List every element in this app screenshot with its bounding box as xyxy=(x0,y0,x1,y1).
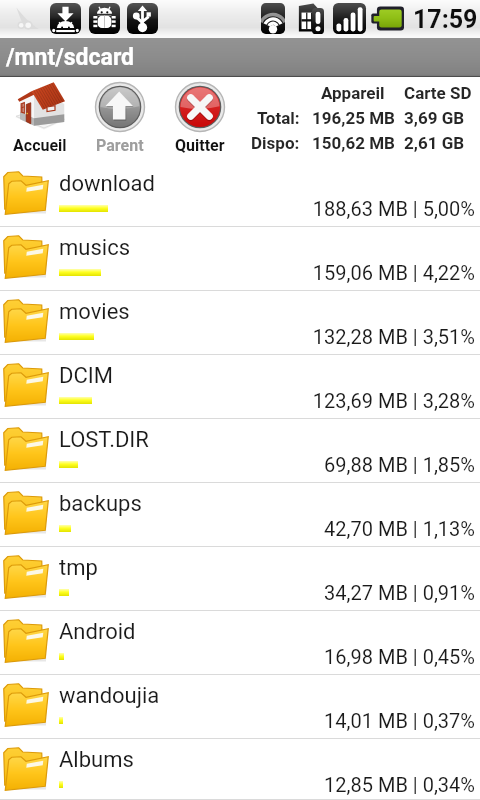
staticText: Dispo: xyxy=(251,133,300,153)
button[interactable]: Android xyxy=(0,611,480,675)
staticText: 16,98 MB | 0,45% xyxy=(0,645,475,668)
staticText: 150,62 MB xyxy=(312,133,395,153)
staticText: 123,69 MB | 3,28% xyxy=(0,389,475,412)
button[interactable]: Quitter xyxy=(160,77,240,163)
button[interactable]: tmp xyxy=(0,547,480,611)
staticText: 17:59 xyxy=(413,5,478,34)
button[interactable]: wandoujia xyxy=(0,675,480,739)
button[interactable]: DCIM xyxy=(0,355,480,419)
staticText: 196,25 MB xyxy=(312,108,395,128)
staticText: Quitter xyxy=(175,136,225,155)
staticText: wandoujia xyxy=(59,683,160,709)
staticText: 188,63 MB | 5,00% xyxy=(0,197,475,220)
staticText: Total: xyxy=(257,108,300,128)
staticText: 12,85 MB | 0,34% xyxy=(0,773,475,796)
staticText: Appareil xyxy=(321,83,385,103)
staticText: Parent xyxy=(96,136,144,155)
button[interactable]: backups xyxy=(0,483,480,547)
staticText: /mnt/sdcard xyxy=(6,44,135,71)
button[interactable]: download xyxy=(0,163,480,227)
staticText: movies xyxy=(59,299,130,325)
staticText: download xyxy=(59,171,155,197)
staticText: backups xyxy=(59,491,142,517)
staticText: Accueil xyxy=(13,136,67,155)
button[interactable]: movies xyxy=(0,291,480,355)
staticText: 2,61 GB xyxy=(404,133,465,153)
staticText: DCIM xyxy=(59,363,113,389)
button[interactable]: LOST.DIR xyxy=(0,419,480,483)
staticText: LOST.DIR xyxy=(59,427,149,453)
button[interactable]: Parent xyxy=(80,77,160,163)
staticText: 14,01 MB | 0,37% xyxy=(0,709,475,732)
staticText: 3,69 GB xyxy=(404,108,465,128)
staticText: 159,06 MB | 4,22% xyxy=(0,261,475,284)
button[interactable]: Albums xyxy=(0,739,480,800)
staticText: 42,70 MB | 1,13% xyxy=(0,517,475,540)
button[interactable]: musics xyxy=(0,227,480,291)
staticText: Carte SD xyxy=(404,83,472,103)
staticText: Android xyxy=(59,619,136,645)
staticText: Albums xyxy=(59,747,134,773)
staticText: musics xyxy=(59,235,130,261)
staticText: 34,27 MB | 0,91% xyxy=(0,581,475,604)
button[interactable]: Accueil xyxy=(0,77,80,163)
staticText: tmp xyxy=(59,555,98,581)
staticText: 132,28 MB | 3,51% xyxy=(0,325,475,348)
staticText: 69,88 MB | 1,85% xyxy=(0,453,475,476)
